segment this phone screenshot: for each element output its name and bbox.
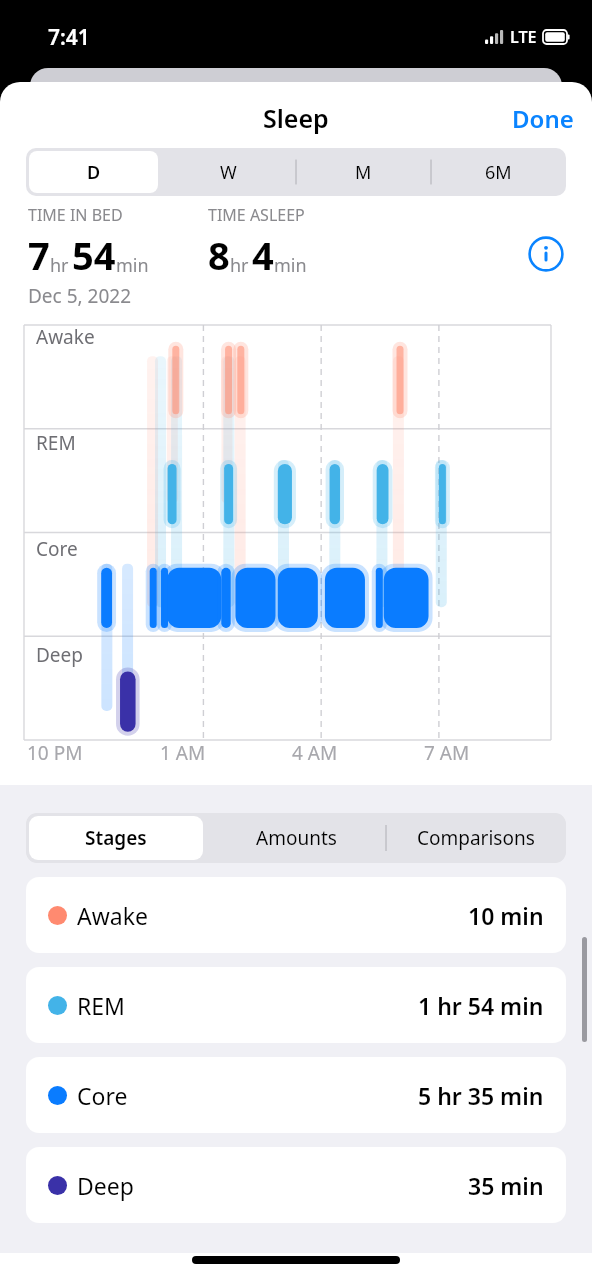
button[interactable]: REM bbox=[26, 967, 566, 1043]
button[interactable]: Done bbox=[494, 96, 592, 141]
button[interactable]: Deep bbox=[26, 1147, 566, 1223]
staticText: 7 AM bbox=[424, 740, 470, 766]
staticText: D bbox=[87, 160, 101, 185]
staticText: REM bbox=[36, 430, 76, 456]
staticText: 54 bbox=[72, 229, 116, 281]
button[interactable]: Stages bbox=[29, 816, 203, 860]
staticText: W bbox=[220, 160, 237, 185]
button[interactable]: Information bbox=[524, 232, 568, 276]
button[interactable]: Core bbox=[26, 1057, 566, 1133]
staticText: hr bbox=[50, 253, 69, 278]
button[interactable]: Amounts bbox=[209, 816, 383, 860]
staticText: Comparisons bbox=[417, 825, 535, 851]
staticText: Dec 5, 2022 bbox=[28, 283, 132, 309]
staticText: min bbox=[274, 253, 307, 278]
button[interactable]: 6M bbox=[434, 151, 563, 193]
staticText: Core bbox=[36, 536, 78, 562]
staticText: REM bbox=[77, 990, 125, 1021]
staticText: Amounts bbox=[256, 825, 337, 851]
staticText: 6M bbox=[485, 160, 512, 185]
staticText: 1 AM bbox=[160, 740, 206, 766]
staticText: Stages bbox=[85, 825, 147, 851]
staticText: M bbox=[355, 160, 372, 185]
button[interactable]: Comparisons bbox=[389, 816, 563, 860]
staticText: 4 bbox=[252, 229, 274, 281]
staticText: TIME IN BED bbox=[28, 204, 123, 226]
staticText: Awake bbox=[77, 900, 148, 931]
button[interactable]: M bbox=[299, 151, 428, 193]
staticText: 5 hr 35 min bbox=[418, 1080, 544, 1111]
staticText: 1 hr 54 min bbox=[418, 990, 544, 1021]
staticText: 7 bbox=[28, 229, 50, 281]
staticText: Awake bbox=[36, 324, 95, 350]
staticText: 4 AM bbox=[292, 740, 338, 766]
staticText: hr bbox=[230, 253, 249, 278]
button[interactable]: D bbox=[29, 151, 158, 193]
staticText: TIME ASLEEP bbox=[208, 204, 305, 226]
staticText: 35 min bbox=[468, 1170, 544, 1201]
staticText: Sleep bbox=[263, 101, 329, 135]
staticText: min bbox=[116, 253, 149, 278]
staticText: Deep bbox=[36, 642, 83, 668]
staticText: 7:41 bbox=[48, 23, 90, 52]
button[interactable]: W bbox=[164, 151, 293, 193]
staticText: LTE bbox=[510, 26, 537, 48]
staticText: 8 bbox=[208, 229, 230, 281]
button[interactable]: Awake bbox=[26, 877, 566, 953]
staticText: Done bbox=[512, 102, 574, 135]
staticText: Core bbox=[77, 1080, 128, 1111]
staticText: Deep bbox=[77, 1170, 134, 1201]
staticText: 10 PM bbox=[27, 740, 83, 766]
staticText: 10 min bbox=[468, 900, 544, 931]
